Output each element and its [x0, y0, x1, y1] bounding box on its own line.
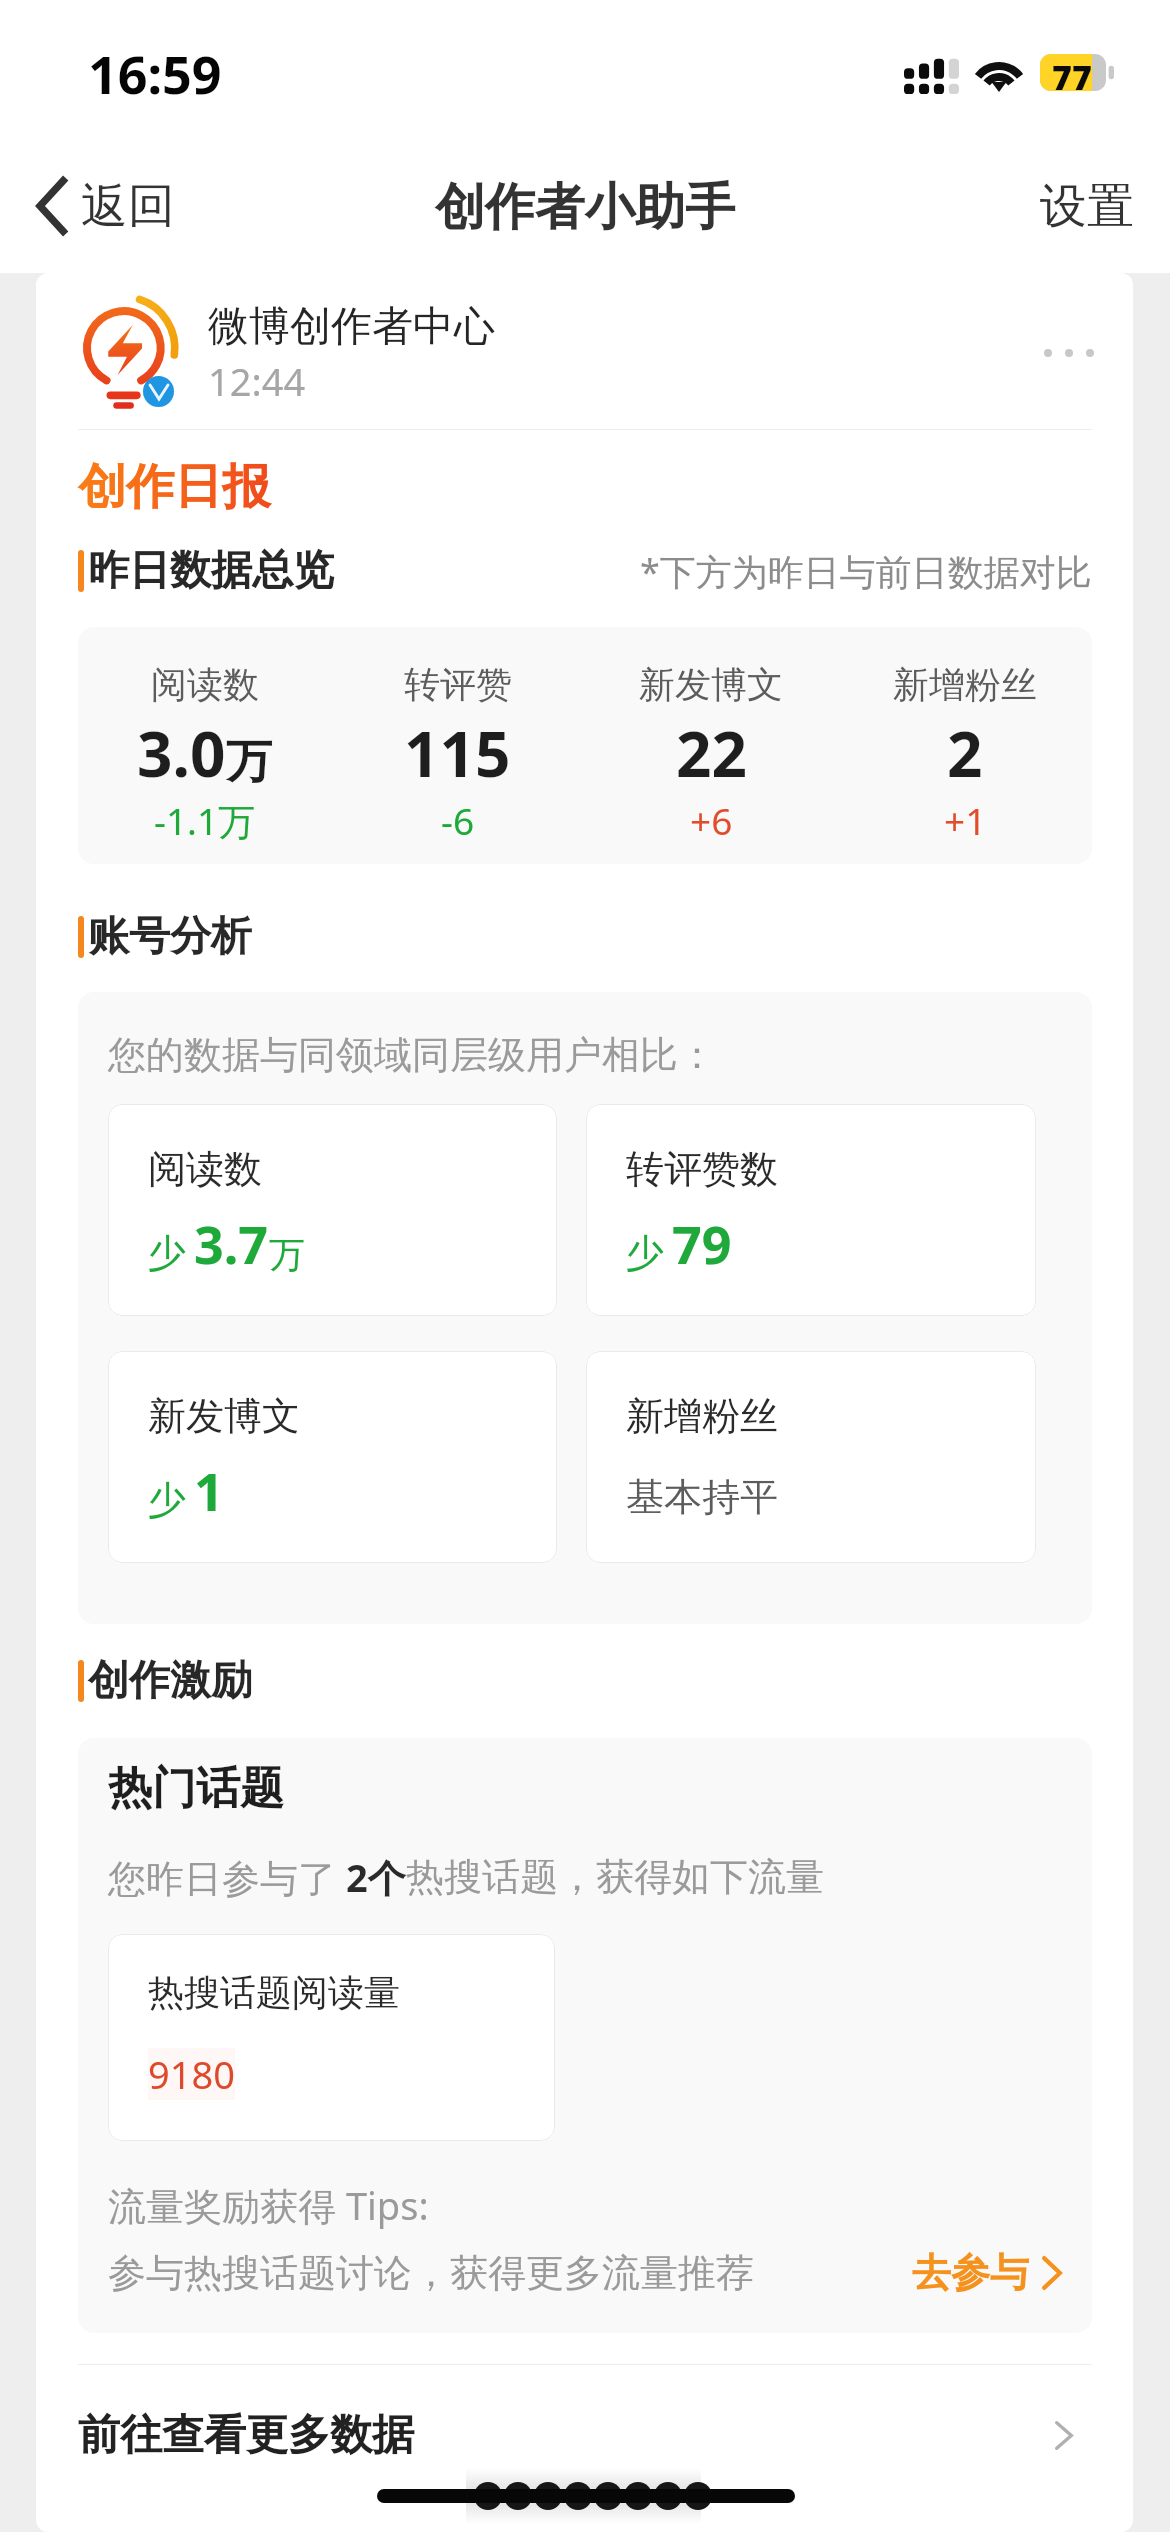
staticText: -1.1万: [154, 795, 256, 846]
staticText: 创作日报: [78, 457, 270, 517]
button[interactable]: 新发博文: [108, 1351, 557, 1563]
staticText: 16:59: [88, 38, 222, 109]
staticText: +6: [690, 795, 733, 845]
staticText: 热搜话题，获得如下流量: [406, 1853, 824, 1901]
button[interactable]: 阅读数: [78, 662, 331, 846]
staticText: 3.7: [194, 1208, 269, 1279]
button[interactable]: 新发博文: [584, 662, 838, 845]
button[interactable]: More options: [1033, 317, 1105, 389]
button[interactable]: 去参与: [912, 2248, 1062, 2297]
staticText: 创作激励: [88, 1655, 252, 1707]
staticText: 阅读数: [151, 662, 259, 707]
staticText: 基本持平: [626, 1473, 778, 1521]
staticText: 转评赞数: [626, 1145, 778, 1193]
staticText: 账号分析: [88, 911, 252, 963]
button[interactable]: 转评赞: [331, 662, 584, 845]
staticText: 阅读数: [148, 1145, 262, 1193]
staticText: 3.0: [137, 711, 226, 795]
staticText: 新增粉丝: [893, 662, 1037, 707]
staticText: +1: [944, 795, 987, 845]
staticText: -6: [441, 795, 475, 845]
staticText: 流量奖励获得 Tips:: [108, 2179, 429, 2231]
staticText: 万: [226, 733, 272, 791]
button[interactable]: 热搜话题阅读量: [108, 1934, 555, 2141]
staticText: 2个: [346, 1851, 406, 1903]
staticText: 万: [269, 1232, 305, 1277]
staticText: 115: [404, 711, 511, 795]
staticText: 热搜话题阅读量: [148, 1970, 400, 2015]
staticText: 少: [148, 1476, 186, 1524]
staticText: 昨日数据总览: [88, 545, 334, 597]
staticText: 参与热搜话题讨论，获得更多流量推荐: [108, 2249, 754, 2297]
staticText: 少: [626, 1229, 664, 1277]
button[interactable]: 前往查看更多数据: [78, 2365, 1092, 2505]
staticText: 前往查看更多数据: [78, 2409, 414, 2462]
staticText: 热门话题: [108, 1761, 284, 1816]
staticText: 12:44: [208, 355, 306, 407]
staticText: 转评赞: [404, 662, 512, 707]
staticText: 返回: [81, 177, 175, 236]
staticText: 2: [947, 711, 983, 795]
staticText: 创作者小助手: [435, 176, 735, 239]
staticText: 少: [148, 1229, 186, 1277]
button[interactable]: 微博创作者中心: [36, 273, 1133, 429]
button[interactable]: 新增粉丝: [586, 1351, 1036, 1563]
button[interactable]: 新增粉丝: [838, 662, 1092, 845]
staticText: 您昨日参与了: [108, 1851, 346, 1903]
button[interactable]: 阅读数: [108, 1104, 557, 1316]
staticText: 新增粉丝: [626, 1392, 778, 1440]
button[interactable]: 设置: [1040, 177, 1134, 236]
staticText: 22: [676, 711, 747, 795]
staticText: 9180: [148, 2048, 235, 2100]
staticText: 微博创作者中心: [208, 301, 495, 353]
staticText: 79: [672, 1208, 732, 1279]
button[interactable]: 转评赞数: [586, 1104, 1036, 1316]
staticText: 您的数据与同领域同层级用户相比：: [108, 1031, 716, 1079]
button[interactable]: 返回: [36, 151, 175, 261]
staticText: 77: [1052, 54, 1092, 91]
staticText: 新发博文: [639, 662, 783, 707]
staticText: 去参与: [912, 2248, 1029, 2297]
staticText: *下方为昨日与前日数据对比: [640, 547, 1092, 596]
staticText: 新发博文: [148, 1392, 300, 1440]
staticText: 1: [194, 1455, 224, 1526]
